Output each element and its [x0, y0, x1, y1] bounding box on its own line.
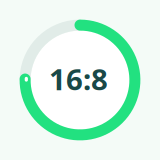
button[interactable]: 16:8 fasting progress	[0, 0, 160, 160]
staticText: 16:8	[49, 59, 108, 98]
